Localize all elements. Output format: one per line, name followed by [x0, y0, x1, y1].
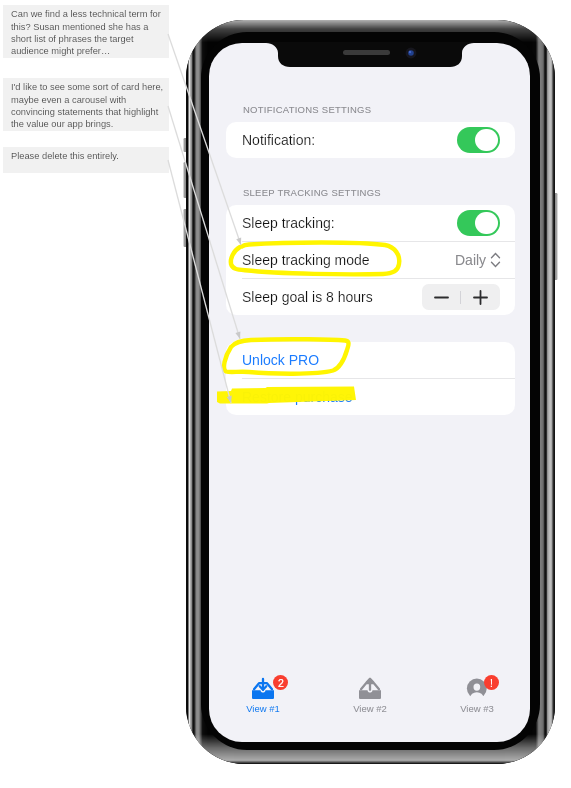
button[interactable]: Daily	[455, 252, 500, 268]
staticText: !	[490, 677, 493, 689]
staticText: I'd like to see some sort of card here, …	[11, 82, 164, 129]
button[interactable]: !	[423, 677, 530, 722]
button[interactable]: Sleep goal is 8 hours	[226, 279, 515, 315]
staticText: View #3	[460, 703, 494, 714]
button[interactable]: Toggle switch	[457, 127, 500, 153]
button[interactable]: Sleep tracking mode	[226, 242, 515, 278]
staticText: Notification:	[242, 132, 316, 148]
button[interactable]: Unlock PRO	[226, 342, 515, 378]
staticText: View #1	[246, 703, 280, 714]
button[interactable]: Restore purchase	[226, 379, 515, 415]
button[interactable]: Sleep tracking:	[226, 205, 515, 241]
staticText: View #2	[353, 703, 387, 714]
staticText: Restore purchase	[242, 389, 353, 405]
staticText: Can we find a less technical term for th…	[11, 9, 164, 56]
button[interactable]: Increase sleep goal	[461, 284, 499, 310]
staticText: Daily	[455, 252, 487, 268]
button[interactable]: 2	[209, 677, 316, 722]
staticText: Please delete this entirely.	[11, 151, 119, 161]
staticText: NOTIFICATIONS SETTINGS	[243, 104, 372, 115]
button[interactable]: Notification:	[226, 122, 515, 158]
staticText: Unlock PRO	[242, 352, 320, 368]
button[interactable]: Toggle switch	[457, 210, 500, 236]
staticText: Sleep tracking mode	[242, 252, 370, 268]
staticText: Sleep goal is 8 hours	[242, 289, 373, 305]
staticText: 2	[278, 677, 284, 689]
button[interactable]: View #2	[316, 677, 423, 722]
staticText: Sleep tracking:	[242, 215, 335, 231]
staticText: SLEEP TRACKING SETTINGS	[243, 187, 381, 198]
button[interactable]: Decrease sleep goal	[422, 284, 460, 310]
